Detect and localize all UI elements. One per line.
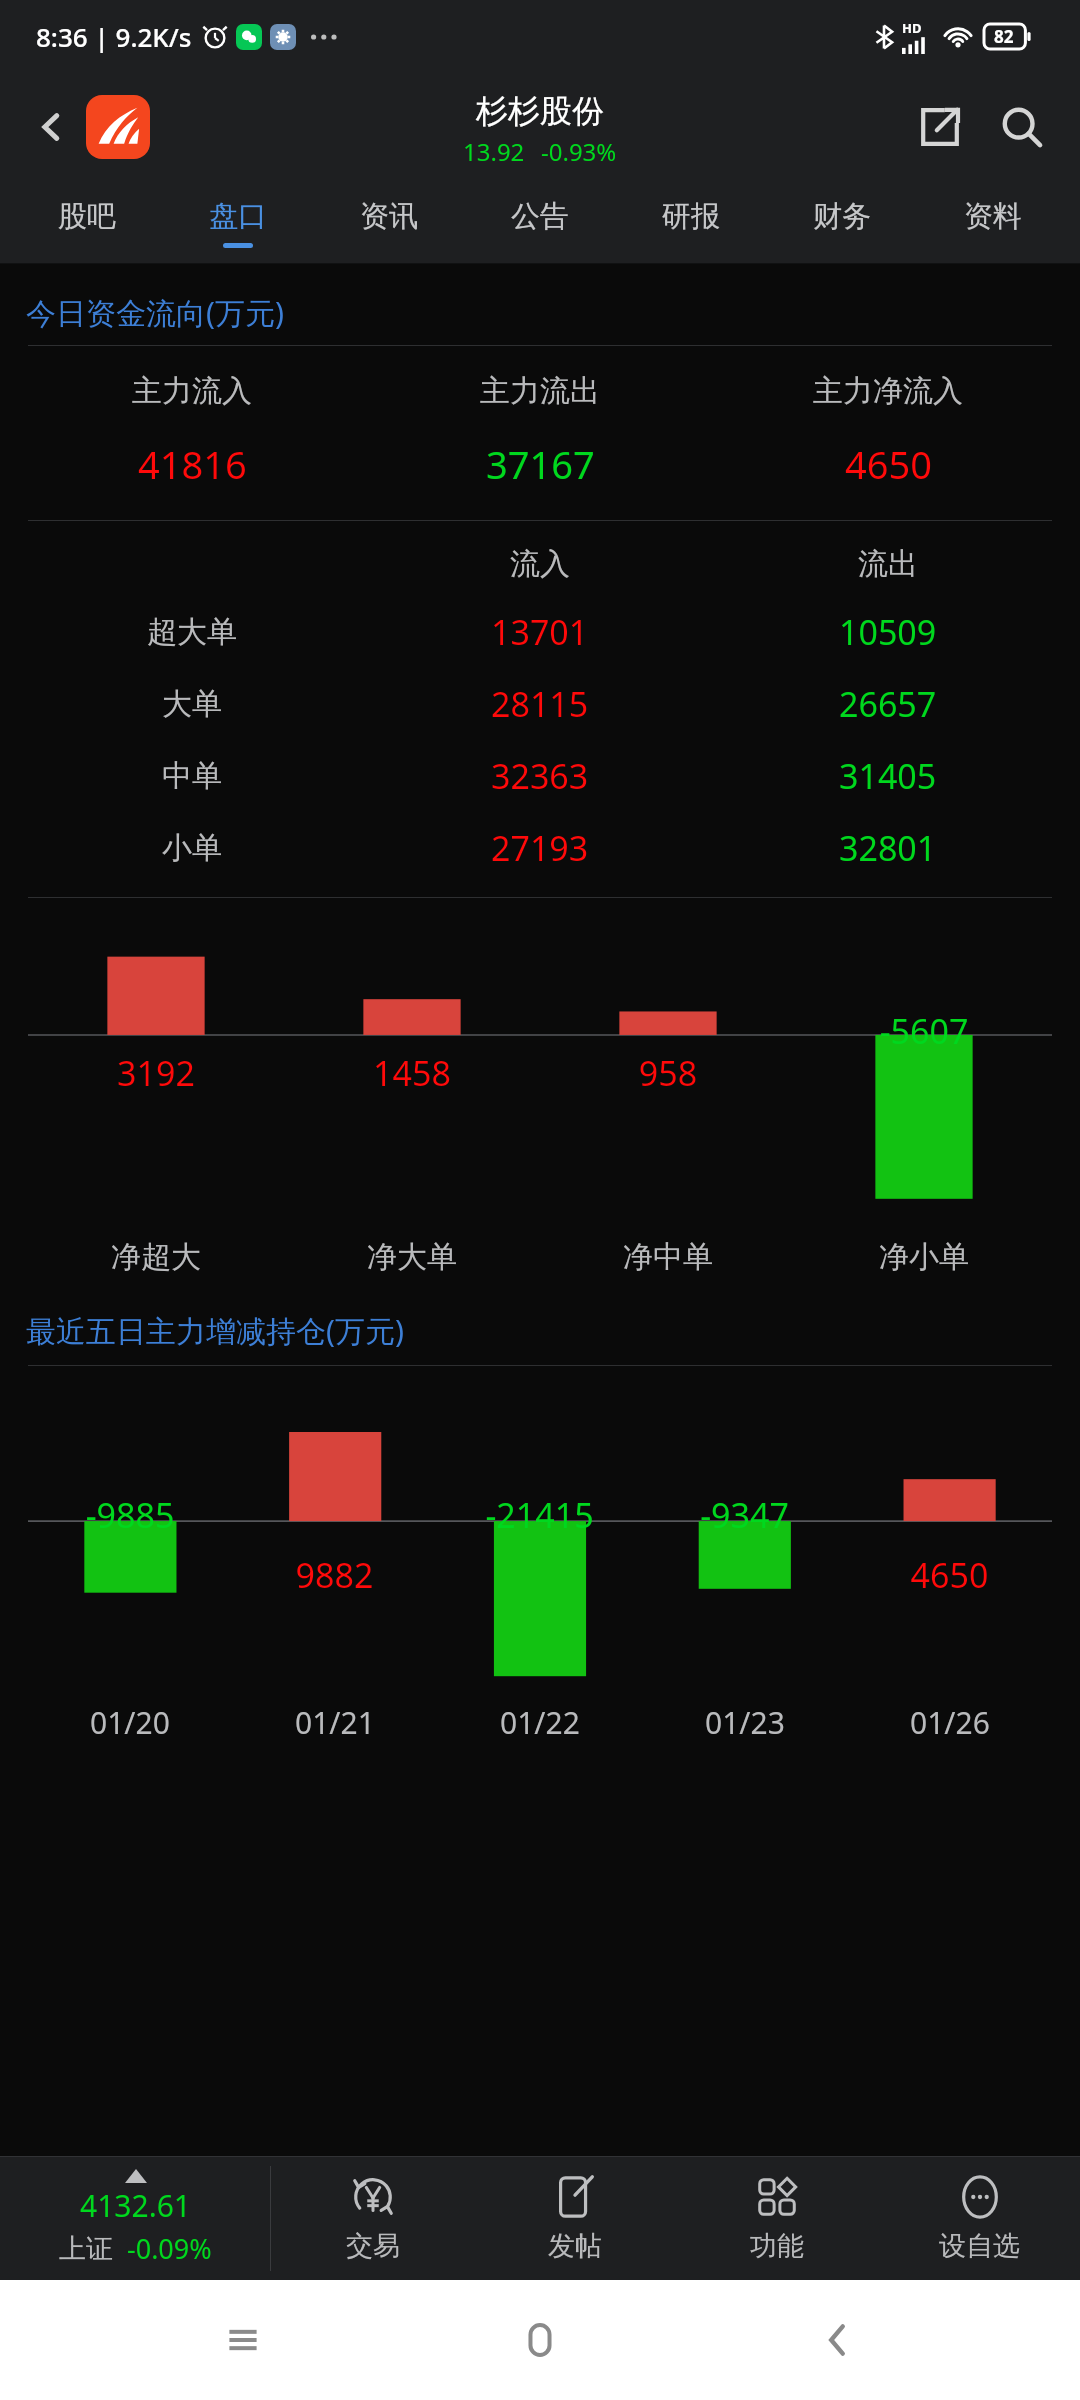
button[interactable]: 4132.61 bbox=[0, 2156, 270, 2280]
staticText: 小单 bbox=[162, 829, 222, 867]
staticText: 32801 bbox=[839, 825, 937, 871]
staticText: 9882 bbox=[232, 1552, 437, 1598]
button[interactable]: Share bbox=[902, 89, 978, 165]
staticText: 上证 bbox=[59, 2232, 113, 2266]
staticText: 958 bbox=[540, 1050, 796, 1096]
button[interactable]: 股吧 bbox=[12, 182, 162, 264]
staticText: 中单 bbox=[162, 757, 222, 795]
staticText: 4650 bbox=[847, 1552, 1052, 1598]
staticText: 净大单 bbox=[367, 1238, 457, 1276]
staticText: 最近五日主力增减持仓(万元) bbox=[26, 1310, 404, 1351]
staticText: 净中单 bbox=[623, 1238, 713, 1276]
staticText: 01/23 bbox=[705, 1702, 785, 1743]
staticText: 盘口 bbox=[209, 198, 267, 235]
staticText: 4650 bbox=[845, 438, 932, 490]
staticText: 流入 bbox=[510, 545, 570, 583]
staticText: 财务 bbox=[813, 198, 871, 235]
staticText: 资讯 bbox=[360, 198, 418, 235]
staticText: 26657 bbox=[839, 681, 937, 727]
staticText: 1458 bbox=[284, 1050, 540, 1096]
button[interactable]: 设自选 bbox=[878, 2156, 1080, 2280]
staticText: -0.09% bbox=[127, 2230, 212, 2267]
staticText: 大单 bbox=[162, 685, 222, 723]
staticText: 01/22 bbox=[500, 1702, 580, 1743]
staticText: 功能 bbox=[750, 2229, 804, 2263]
staticText: 4132.61 bbox=[80, 2185, 191, 2226]
staticText: 01/26 bbox=[910, 1702, 990, 1743]
staticText: 10509 bbox=[839, 609, 937, 655]
staticText: 01/21 bbox=[295, 1702, 375, 1743]
staticText: 研报 bbox=[662, 198, 720, 235]
staticText: 13701 bbox=[491, 609, 589, 655]
button[interactable]: 发帖 bbox=[474, 2156, 676, 2280]
staticText: 8:36 | 9.2K/s bbox=[36, 19, 192, 54]
staticText: -5607 bbox=[796, 1008, 1052, 1054]
button[interactable]: App icon bbox=[86, 95, 150, 159]
button[interactable]: 资料 bbox=[917, 182, 1068, 264]
button[interactable]: 盘口 bbox=[162, 182, 313, 264]
button[interactable]: Home bbox=[485, 2285, 595, 2395]
staticText: 82 bbox=[994, 25, 1014, 48]
staticText: 净超大 bbox=[111, 1238, 201, 1276]
button[interactable]: 资讯 bbox=[313, 182, 464, 264]
staticText: 发帖 bbox=[548, 2229, 602, 2263]
staticText: 超大单 bbox=[147, 613, 237, 651]
staticText: 37167 bbox=[486, 438, 595, 490]
staticText: HD bbox=[902, 19, 922, 37]
staticText: 主力流出 bbox=[480, 372, 600, 410]
button[interactable]: 财务 bbox=[766, 182, 917, 264]
staticText: 31405 bbox=[839, 753, 937, 799]
staticText: 设自选 bbox=[939, 2229, 1020, 2263]
staticText: 股吧 bbox=[58, 198, 116, 235]
staticText: -21415 bbox=[437, 1492, 642, 1538]
staticText: 41816 bbox=[138, 438, 247, 490]
button[interactable]: 功能 bbox=[676, 2156, 878, 2280]
staticText: -9885 bbox=[28, 1492, 232, 1538]
staticText: 资料 bbox=[964, 198, 1022, 235]
staticText: 净小单 bbox=[879, 1238, 969, 1276]
staticText: 今日资金流向(万元) bbox=[26, 292, 284, 333]
staticText: -0.93% bbox=[541, 135, 617, 168]
staticText: 28115 bbox=[491, 681, 589, 727]
button[interactable]: 公告 bbox=[464, 182, 615, 264]
staticText: 主力流入 bbox=[132, 372, 252, 410]
staticText: 主力净流入 bbox=[813, 372, 963, 410]
staticText: 公告 bbox=[511, 198, 569, 235]
staticText: 32363 bbox=[491, 753, 589, 799]
staticText: 01/20 bbox=[90, 1702, 170, 1743]
staticText: 27193 bbox=[491, 825, 589, 871]
button[interactable]: Recents bbox=[188, 2285, 298, 2395]
staticText: 杉杉股份 bbox=[476, 91, 604, 131]
staticText: 3192 bbox=[28, 1050, 284, 1096]
staticText: 流出 bbox=[858, 545, 918, 583]
button[interactable]: Back bbox=[783, 2285, 893, 2395]
button[interactable]: Back bbox=[22, 97, 82, 157]
staticText: -9347 bbox=[642, 1492, 847, 1538]
staticText: 交易 bbox=[346, 2229, 400, 2263]
button[interactable]: Search bbox=[984, 89, 1060, 165]
staticText: 13.92 bbox=[463, 135, 525, 168]
button[interactable]: 研报 bbox=[615, 182, 766, 264]
button[interactable]: 交易 bbox=[271, 2156, 474, 2280]
